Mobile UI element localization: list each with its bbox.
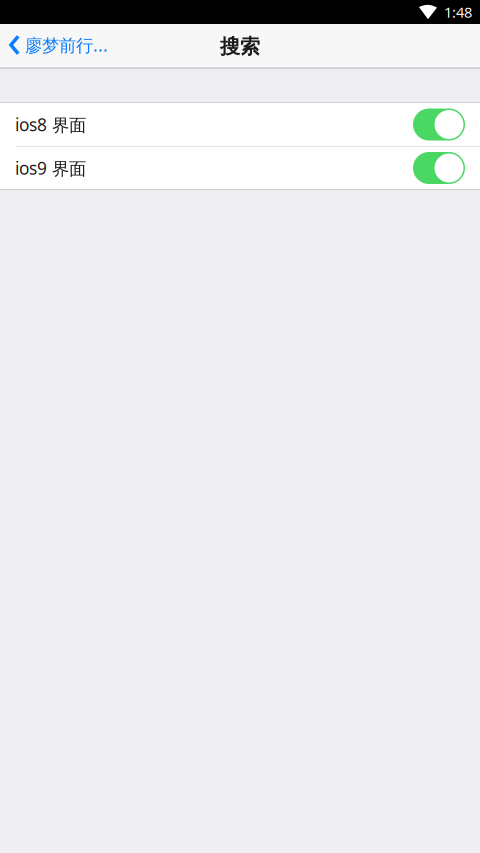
- button[interactable]: ios8 界面: [0, 103, 480, 146]
- staticText: 搜索: [220, 34, 260, 59]
- staticText: ios8 界面: [15, 113, 86, 136]
- button[interactable]: 廖梦前行...: [0, 23, 108, 66]
- button[interactable]: ios8 界面: [413, 108, 465, 140]
- button[interactable]: ios9 界面: [0, 147, 480, 189]
- staticText: ios9 界面: [15, 156, 86, 179]
- button[interactable]: ios9 界面: [413, 152, 465, 184]
- staticText: 1:48: [444, 2, 472, 22]
- staticText: 廖梦前行...: [25, 33, 108, 56]
